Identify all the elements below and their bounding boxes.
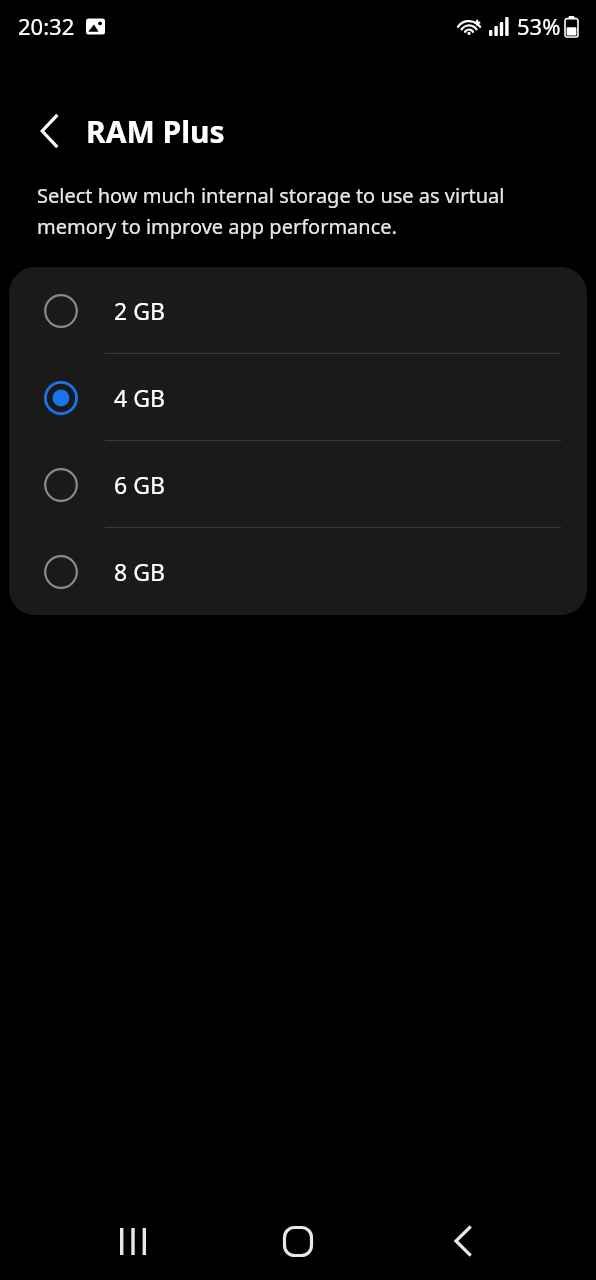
staticText: Select how much internal storage to use … <box>37 182 541 240</box>
staticText: 20:32 <box>18 11 75 41</box>
staticText: 8 GB <box>114 556 165 587</box>
staticText: RAM Plus <box>86 111 225 152</box>
staticText: 53% <box>517 11 561 41</box>
staticText: 6 GB <box>114 469 165 500</box>
button[interactable]: Recents <box>98 1206 168 1276</box>
button[interactable]: 8 GB <box>9 528 587 615</box>
button[interactable]: 2 GB <box>9 267 587 354</box>
button[interactable]: Back <box>428 1206 498 1276</box>
staticText: 2 GB <box>114 295 165 326</box>
button[interactable]: Home <box>263 1206 333 1276</box>
staticText: 4 GB <box>114 382 165 413</box>
button[interactable]: 4 GB <box>9 354 587 441</box>
button[interactable]: Back <box>22 103 78 159</box>
button[interactable]: 6 GB <box>9 441 587 528</box>
